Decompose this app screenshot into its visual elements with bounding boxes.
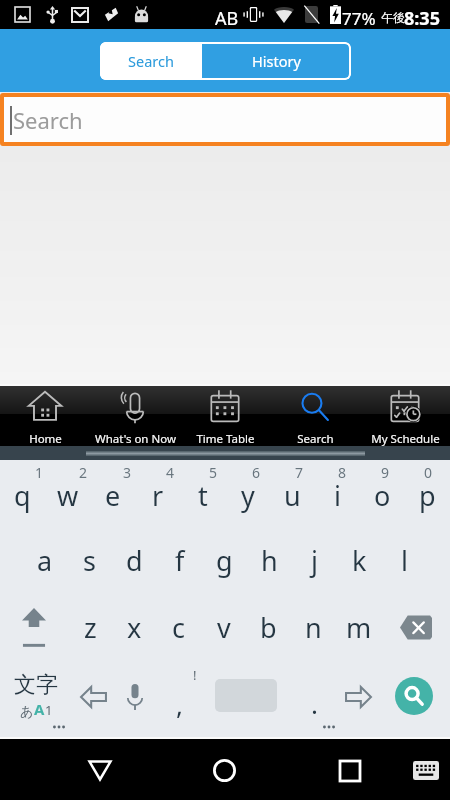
staticText: j: [311, 542, 318, 579]
staticText: 5: [209, 463, 218, 482]
staticText: Search: [13, 105, 83, 135]
button[interactable]: ,: [160, 661, 202, 737]
button[interactable]: Search: [3, 96, 447, 143]
staticText: i: [334, 477, 341, 514]
button[interactable]: Time Table: [180, 386, 270, 446]
button[interactable]: y: [225, 477, 270, 514]
button[interactable]: Next: [343, 661, 373, 737]
staticText: Search: [128, 51, 174, 71]
staticText: 8:35: [404, 6, 440, 31]
button[interactable]: w: [45, 477, 90, 514]
button[interactable]: i: [315, 477, 360, 514]
button[interactable]: Back: [78, 661, 108, 737]
staticText: n: [305, 609, 322, 646]
staticText: 4: [166, 463, 175, 482]
button[interactable]: c: [156, 594, 201, 661]
staticText: History: [252, 51, 301, 71]
staticText: 9: [381, 463, 390, 482]
staticText: u: [284, 477, 301, 514]
staticText: b: [260, 609, 277, 646]
button[interactable]: [202, 661, 292, 737]
staticText: a: [37, 542, 53, 579]
staticText: v: [217, 609, 231, 646]
button[interactable]: My Schedule: [360, 386, 450, 446]
staticText: q: [14, 477, 31, 514]
staticText: !: [193, 666, 197, 684]
staticText: 8: [338, 463, 347, 482]
button[interactable]: e: [90, 477, 135, 514]
button[interactable]: h: [247, 527, 292, 594]
staticText: Time Table: [196, 431, 255, 446]
staticText: s: [83, 542, 96, 579]
staticText: x: [127, 609, 142, 646]
button[interactable]: Switch keyboard: [403, 748, 448, 793]
staticText: A: [34, 699, 45, 719]
button[interactable]: f: [157, 527, 202, 594]
staticText: .: [311, 686, 318, 721]
button[interactable]: t: [180, 477, 225, 514]
staticText: y: [241, 477, 255, 514]
staticText: AB: [215, 6, 239, 31]
button[interactable]: z: [68, 594, 112, 661]
button[interactable]: .: [294, 661, 334, 737]
staticText: t: [198, 477, 208, 514]
button[interactable]: m: [336, 594, 381, 661]
button[interactable]: q: [0, 477, 45, 514]
staticText: l: [401, 542, 408, 579]
staticText: w: [57, 477, 79, 514]
staticText: 77%: [342, 7, 376, 30]
button[interactable]: k: [337, 527, 382, 594]
staticText: 文字: [14, 671, 58, 699]
button[interactable]: v: [201, 594, 246, 661]
staticText: o: [374, 477, 391, 514]
staticText: r: [152, 477, 164, 514]
button[interactable]: Shift: [0, 594, 68, 661]
staticText: 1: [35, 463, 44, 482]
button[interactable]: u: [270, 477, 315, 514]
button[interactable]: Backspace: [381, 594, 450, 661]
staticText: p: [419, 477, 436, 514]
staticText: k: [352, 542, 367, 579]
staticText: e: [105, 477, 121, 514]
button[interactable]: x: [112, 594, 156, 661]
staticText: My Schedule: [371, 431, 440, 446]
staticText: g: [216, 542, 233, 579]
button[interactable]: Recent apps: [327, 748, 372, 793]
button[interactable]: l: [382, 527, 427, 594]
staticText: Search: [297, 431, 334, 446]
staticText: 1: [45, 701, 53, 719]
staticText: 6: [252, 463, 261, 482]
staticText: h: [261, 542, 278, 579]
button[interactable]: History: [204, 44, 349, 78]
staticText: z: [84, 609, 97, 646]
button[interactable]: p: [405, 477, 450, 514]
staticText: ,: [176, 687, 183, 722]
staticText: 0: [424, 463, 433, 482]
button[interactable]: n: [291, 594, 336, 661]
button[interactable]: a: [23, 527, 67, 594]
button[interactable]: b: [246, 594, 291, 661]
button[interactable]: j: [292, 527, 337, 594]
button[interactable]: Back: [77, 748, 122, 793]
button[interactable]: Search: [270, 386, 360, 446]
staticText: 3: [123, 463, 132, 482]
button[interactable]: d: [112, 527, 157, 594]
staticText: 7: [295, 463, 304, 482]
button[interactable]: 文字: [0, 661, 72, 737]
button[interactable]: Voice input: [118, 661, 152, 737]
button[interactable]: g: [202, 527, 247, 594]
staticText: m: [346, 609, 372, 646]
staticText: 2: [79, 463, 88, 482]
button[interactable]: s: [67, 527, 112, 594]
button[interactable]: Search: [100, 42, 202, 80]
button[interactable]: Home: [202, 748, 247, 793]
staticText: あ: [20, 703, 34, 719]
staticText: d: [126, 542, 143, 579]
button[interactable]: o: [360, 477, 405, 514]
button[interactable]: Search: [385, 661, 443, 737]
button[interactable]: Home: [0, 386, 90, 446]
staticText: What's on Now: [95, 431, 176, 446]
button[interactable]: What's on Now: [90, 386, 180, 446]
staticText: c: [172, 609, 185, 646]
button[interactable]: r: [135, 477, 180, 514]
